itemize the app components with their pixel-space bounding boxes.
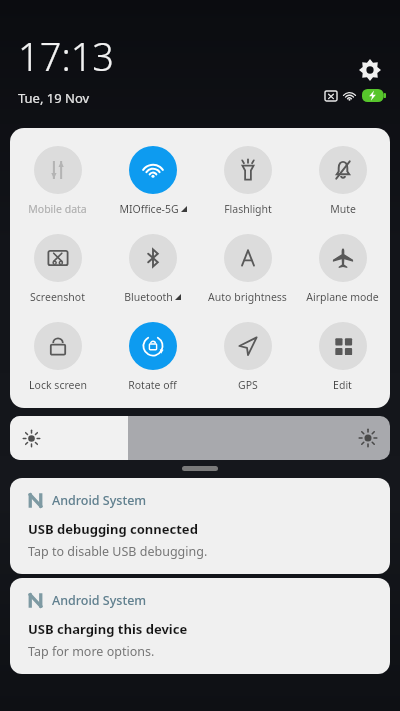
staticText: Rotate off (128, 378, 177, 392)
button[interactable]: Airplane mode (295, 232, 390, 306)
button[interactable]: Lock screen (10, 320, 105, 394)
staticText: Mute (330, 202, 356, 216)
button[interactable]: Flashlight (200, 144, 295, 218)
button[interactable]: Android System (10, 578, 390, 674)
staticText: MIOffice-5G (119, 202, 179, 216)
button[interactable]: Bluetooth (105, 232, 200, 306)
staticText: Tap to disable USB debugging. (28, 543, 208, 560)
button[interactable]: Brightness (10, 416, 390, 460)
button[interactable]: Screenshot (10, 232, 105, 306)
staticText: Tap for more options. (28, 643, 155, 660)
button[interactable]: MIOffice-5G (105, 144, 200, 218)
staticText: Edit (333, 378, 352, 392)
staticText: 17:13 (18, 30, 115, 82)
button[interactable]: Rotate off (105, 320, 200, 394)
staticText: Mobile data (28, 202, 87, 216)
staticText: USB charging this device (28, 620, 188, 638)
staticText: Tue, 19 Nov (18, 89, 90, 107)
staticText: GPS (238, 378, 258, 392)
button[interactable]: Edit (295, 320, 390, 394)
staticText: USB debugging connected (28, 520, 198, 538)
button[interactable]: Settings (353, 53, 387, 87)
staticText: Lock screen (29, 378, 87, 392)
staticText: Flashlight (224, 202, 272, 216)
button[interactable]: GPS (200, 320, 295, 394)
button[interactable]: Mobile data (10, 144, 105, 218)
staticText: Airplane mode (306, 290, 379, 304)
staticText: Bluetooth (124, 290, 173, 304)
staticText: Android System (52, 492, 147, 509)
staticText: Auto brightness (208, 290, 287, 304)
button[interactable]: Android System (10, 478, 390, 574)
staticText: Screenshot (30, 290, 85, 304)
button[interactable]: Expand (182, 466, 218, 471)
button[interactable]: Mute (295, 144, 390, 218)
button[interactable]: Auto brightness (200, 232, 295, 306)
staticText: Android System (52, 592, 147, 609)
